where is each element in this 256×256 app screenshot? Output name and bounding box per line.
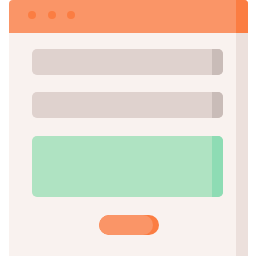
button[interactable]: Window control [48,11,56,19]
button[interactable]: Submit [99,215,159,235]
button[interactable]: Window control [28,11,36,19]
button[interactable]: Text field [32,92,223,118]
button[interactable]: Text field [32,49,223,75]
button[interactable]: Message area [32,136,223,197]
button[interactable]: Window control [67,11,75,19]
